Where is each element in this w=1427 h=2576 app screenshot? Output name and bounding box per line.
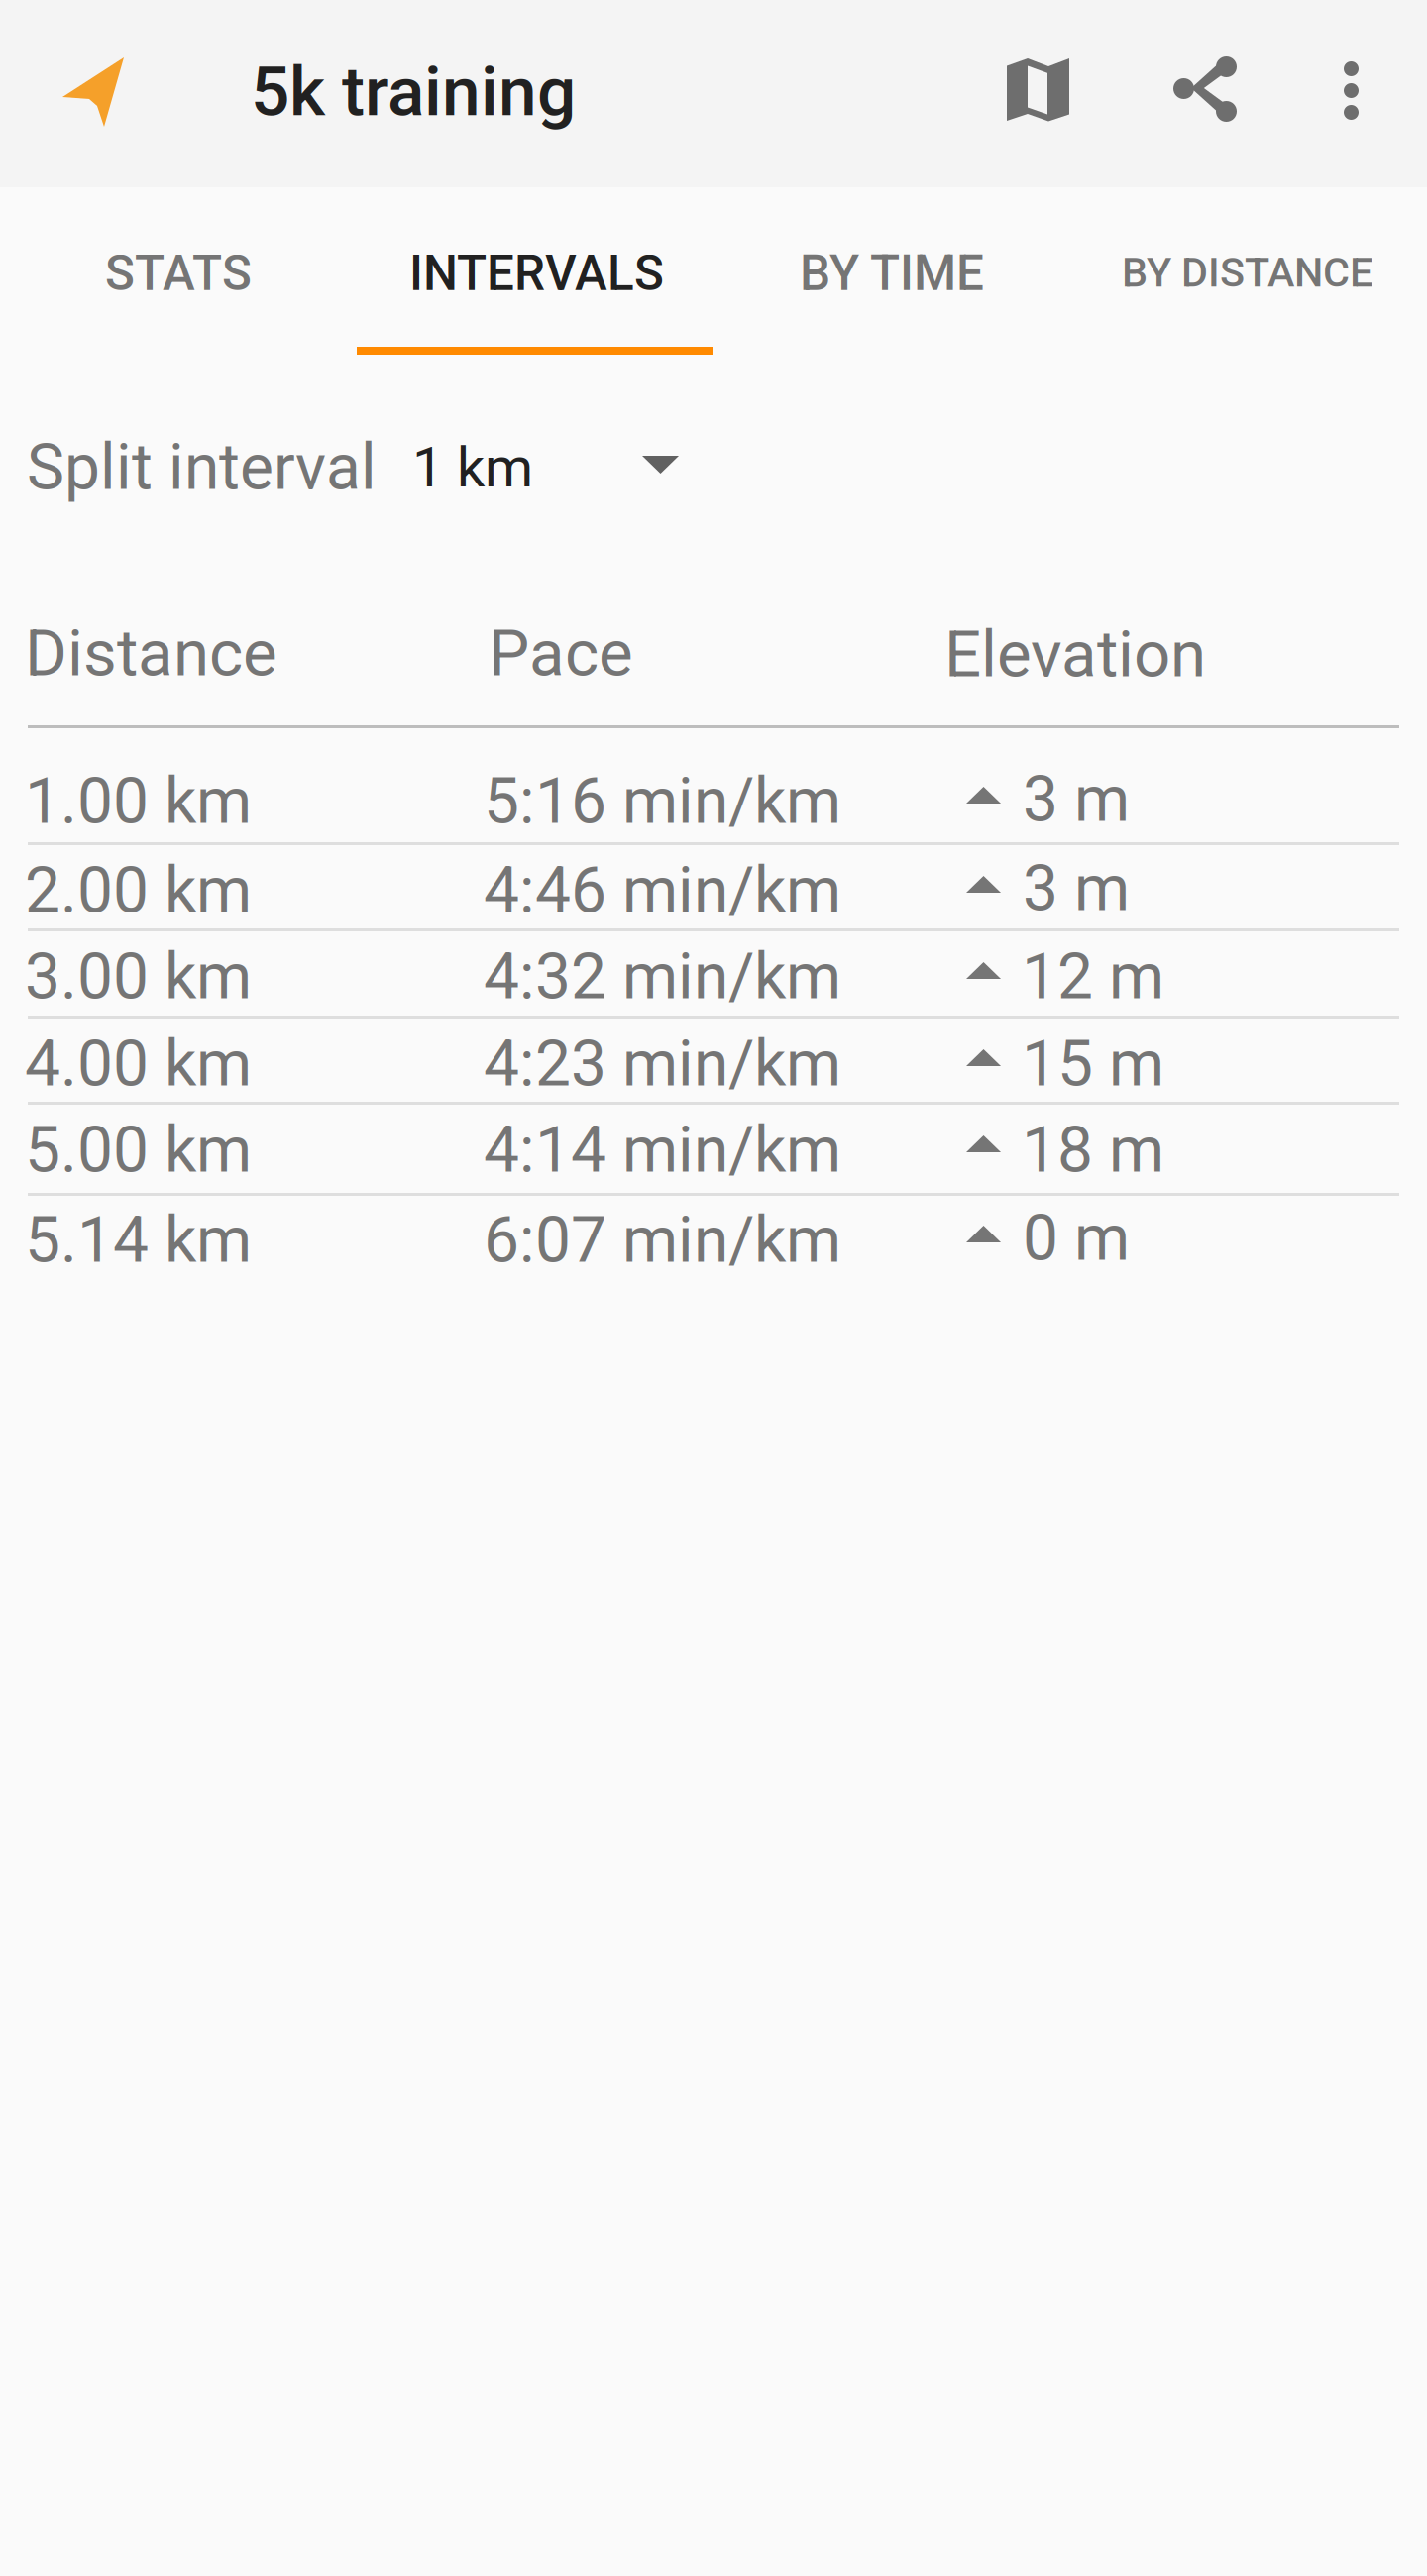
staticText: 12 m [1022, 939, 1164, 1014]
button[interactable]: Navigate [0, 0, 186, 187]
button[interactable]: More options [1274, 0, 1427, 187]
button[interactable]: Share [1136, 0, 1274, 187]
button[interactable]: STATS [0, 187, 357, 359]
staticText: 0 m [1023, 1201, 1130, 1275]
staticText: 4:23 min/km [484, 1026, 841, 1101]
staticText: 18 m [1022, 1113, 1164, 1187]
staticText: 3.00 km [25, 939, 252, 1014]
staticText: 5.00 km [25, 1113, 252, 1187]
button[interactable]: Map [941, 0, 1136, 187]
staticText: BY DISTANCE [1122, 249, 1372, 297]
staticText: 5k training [251, 52, 576, 132]
staticText: 5.14 km [25, 1203, 252, 1277]
staticText: 4:46 min/km [484, 853, 841, 927]
staticText: STATS [105, 245, 252, 302]
staticText: BY TIME [800, 245, 984, 302]
staticText: 2.00 km [25, 853, 252, 927]
staticText: 3 m [1023, 762, 1130, 836]
staticText: INTERVALS [409, 245, 664, 302]
button[interactable]: INTERVALS [357, 187, 713, 359]
staticText: 3 m [1023, 851, 1130, 925]
staticText: 5:16 min/km [484, 764, 841, 838]
staticText: 4:32 min/km [484, 939, 841, 1014]
button[interactable]: BY DISTANCE [1070, 187, 1427, 359]
button[interactable]: Split interval [0, 359, 1427, 565]
staticText: 1.00 km [25, 764, 252, 838]
staticText: Split interval [27, 430, 377, 504]
staticText: 4.00 km [25, 1026, 252, 1101]
staticText: Distance [25, 615, 277, 691]
staticText: 4:14 min/km [484, 1113, 841, 1187]
staticText: 6:07 min/km [484, 1203, 841, 1277]
staticText: Pace [489, 615, 633, 691]
staticText: 15 m [1022, 1026, 1164, 1101]
staticText: 1 km [412, 435, 533, 500]
staticText: Elevation [944, 616, 1206, 692]
button[interactable]: BY TIME [713, 187, 1070, 359]
